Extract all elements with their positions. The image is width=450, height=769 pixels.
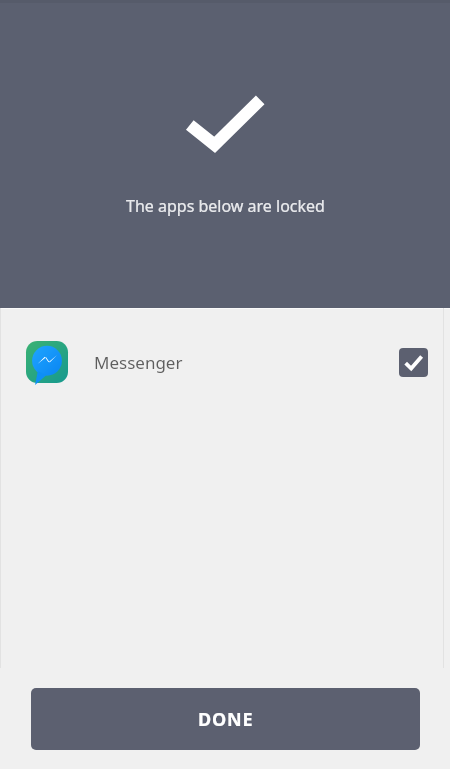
button[interactable]: DONE (31, 688, 420, 750)
button[interactable]: Lock Messenger (391, 340, 435, 384)
staticText: Messenger (94, 351, 391, 374)
staticText: The apps below are locked (126, 195, 325, 217)
staticText: DONE (198, 707, 254, 732)
button[interactable]: Messenger (0, 328, 450, 396)
